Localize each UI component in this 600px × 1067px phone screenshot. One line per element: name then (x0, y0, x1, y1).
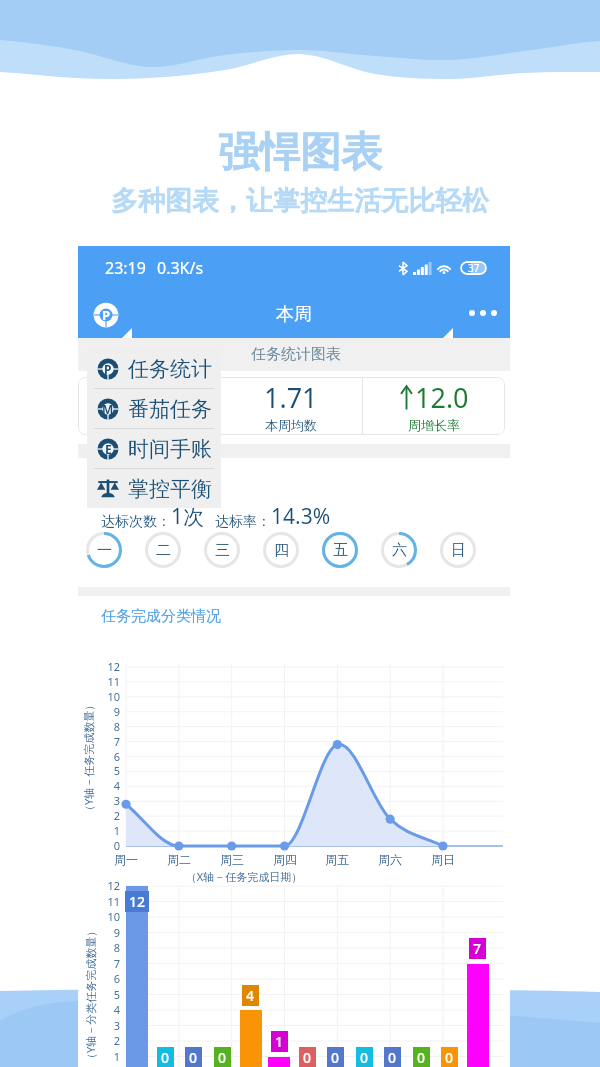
button[interactable]: 掌控平衡 (87, 469, 221, 508)
staticText: 周六 (370, 852, 410, 867)
staticText: （Y轴－分类任务完成数量） (83, 925, 98, 1064)
staticText: 12 (92, 878, 120, 893)
staticText: 本周 (276, 303, 312, 326)
staticText: 11 (92, 674, 120, 689)
staticText: 周二 (159, 852, 199, 867)
staticText: 0 (303, 1048, 312, 1067)
staticText: 0 (92, 838, 120, 853)
staticText: 7 (92, 956, 120, 971)
staticText: 23:19 (105, 257, 146, 279)
staticText: （X轴－任务完成日期） (28, 869, 460, 884)
staticText: E (105, 441, 112, 457)
staticText: 0 (189, 1048, 198, 1067)
staticText: 任务统计 (128, 356, 212, 382)
staticText: 1.71 (264, 379, 318, 416)
staticText: 0 (388, 1048, 397, 1067)
staticText: 6 (92, 749, 120, 764)
staticText: 强悍图表 (0, 127, 600, 179)
button[interactable]: M (87, 389, 221, 428)
staticText: 1 (92, 823, 120, 838)
staticText: （Y轴－任务完成数量） (81, 699, 96, 816)
staticText: 一 (97, 541, 112, 560)
staticText: 12 (92, 659, 120, 674)
staticText: 0 (218, 1048, 227, 1067)
staticText: 三 (215, 541, 230, 560)
staticText: 本周均数 (265, 417, 317, 433)
staticText: 11 (92, 894, 120, 909)
staticText: 时间手账 (128, 436, 212, 462)
staticText: 0 (417, 1048, 426, 1067)
staticText: 2 (92, 808, 120, 823)
button[interactable]: 1 (78, 377, 219, 435)
staticText: 5 (92, 987, 120, 1002)
staticText: 本周总数 (123, 417, 175, 433)
staticText: 12.0 (415, 379, 469, 416)
staticText: 2 (92, 1033, 120, 1048)
staticText: 6 (92, 971, 120, 986)
staticText: 0.3K/s (157, 257, 204, 279)
staticText: 8 (92, 719, 120, 734)
staticText: 0 (331, 1048, 340, 1067)
staticText: M (102, 401, 114, 417)
staticText: 5 (92, 763, 120, 778)
staticText: 7 (92, 734, 120, 749)
staticText: 周一 (106, 852, 146, 867)
button[interactable]: App logo (93, 302, 119, 328)
staticText: 达标次数： (101, 513, 171, 531)
staticText: 0 (445, 1048, 454, 1067)
staticText: 日 (451, 541, 466, 560)
staticText: 7 (473, 939, 482, 958)
staticText: 1 (92, 1049, 120, 1064)
button[interactable]: More options (463, 302, 503, 324)
staticText: 0 (161, 1048, 170, 1067)
staticText: 五 (333, 541, 348, 560)
button[interactable]: 五 (321, 531, 359, 569)
staticText: P (104, 361, 112, 377)
staticText: 12 (129, 892, 146, 911)
staticText: 掌控平衡 (128, 476, 212, 502)
button[interactable]: 六 (380, 531, 418, 569)
button[interactable]: 日 (439, 531, 477, 569)
staticText: 周增长率 (408, 417, 460, 433)
staticText: 番茄任务 (128, 396, 212, 422)
staticText: 4 (246, 986, 255, 1005)
button[interactable]: 12.0 (363, 377, 505, 435)
staticText: 9 (92, 925, 120, 940)
staticText: 任务完成分类情况 (101, 607, 221, 626)
staticText: 3 (92, 793, 120, 808)
button[interactable]: 1.71 (220, 377, 362, 435)
staticText: 达标率： (215, 513, 271, 531)
staticText: 周日 (423, 852, 463, 867)
staticText: 四 (274, 541, 289, 560)
staticText: 周三 (212, 852, 252, 867)
staticText: 37 (468, 261, 480, 275)
button[interactable]: P (87, 349, 221, 388)
staticText: 周四 (265, 852, 305, 867)
staticText: 10 (92, 689, 120, 704)
staticText: 周五 (317, 852, 357, 867)
button[interactable]: 一 (85, 531, 123, 569)
button[interactable]: 三 (203, 531, 241, 569)
staticText: 六 (392, 541, 407, 560)
staticText: 0 (360, 1048, 369, 1067)
staticText: 10 (92, 909, 120, 924)
staticText: 任务统计图表 (251, 345, 341, 364)
staticText: 1 (141, 379, 157, 416)
staticText: 3 (92, 1018, 120, 1033)
button[interactable]: 四 (262, 531, 300, 569)
button[interactable]: E (87, 429, 221, 468)
staticText: 1 (275, 1032, 284, 1051)
staticText: 多种图表，让掌控生活无比轻松 (0, 184, 600, 218)
staticText: 8 (92, 940, 120, 955)
staticText: 4 (92, 778, 120, 793)
staticText: 14.3% (271, 502, 331, 531)
button[interactable]: 二 (144, 531, 182, 569)
staticText: 1次 (171, 502, 205, 531)
staticText: P (102, 306, 111, 324)
staticText: 9 (92, 704, 120, 719)
staticText: 二 (156, 541, 171, 560)
staticText: 4 (92, 1002, 120, 1017)
